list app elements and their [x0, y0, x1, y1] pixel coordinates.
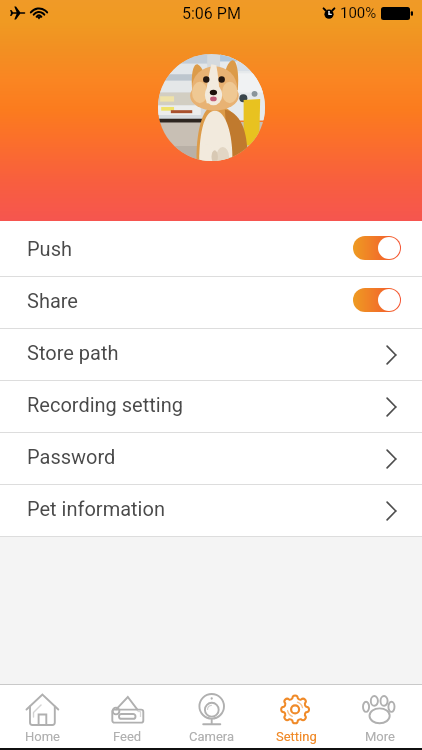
button[interactable]: Recording setting — [0, 381, 422, 432]
button[interactable]: Toggle Push — [353, 236, 401, 260]
button[interactable]: Password — [0, 433, 422, 484]
staticText: Store path — [27, 341, 119, 364]
staticText: Pet information — [27, 497, 165, 520]
staticText: More — [365, 729, 395, 744]
staticText: Password — [27, 445, 116, 468]
staticText: Home — [25, 729, 60, 744]
button[interactable]: Toggle Share — [353, 288, 401, 312]
button[interactable]: Push — [0, 225, 422, 276]
staticText: Share — [27, 289, 78, 312]
button[interactable]: Share — [0, 277, 422, 328]
staticText: 100% — [340, 4, 377, 22]
button[interactable]: Store path — [0, 329, 422, 380]
button[interactable]: Setting — [254, 685, 338, 748]
staticText: Setting — [276, 729, 317, 744]
staticText: Feed — [113, 729, 142, 744]
button[interactable]: More — [338, 685, 422, 748]
button[interactable]: Home — [0, 685, 85, 748]
button[interactable]: Feed — [85, 685, 170, 748]
staticText: 5:06 PM — [182, 4, 241, 23]
button[interactable]: Pet information — [0, 485, 422, 536]
button[interactable]: Camera — [170, 685, 254, 748]
staticText: Push — [27, 237, 72, 260]
staticText: Camera — [189, 729, 235, 744]
staticText: Recording setting — [27, 393, 183, 416]
